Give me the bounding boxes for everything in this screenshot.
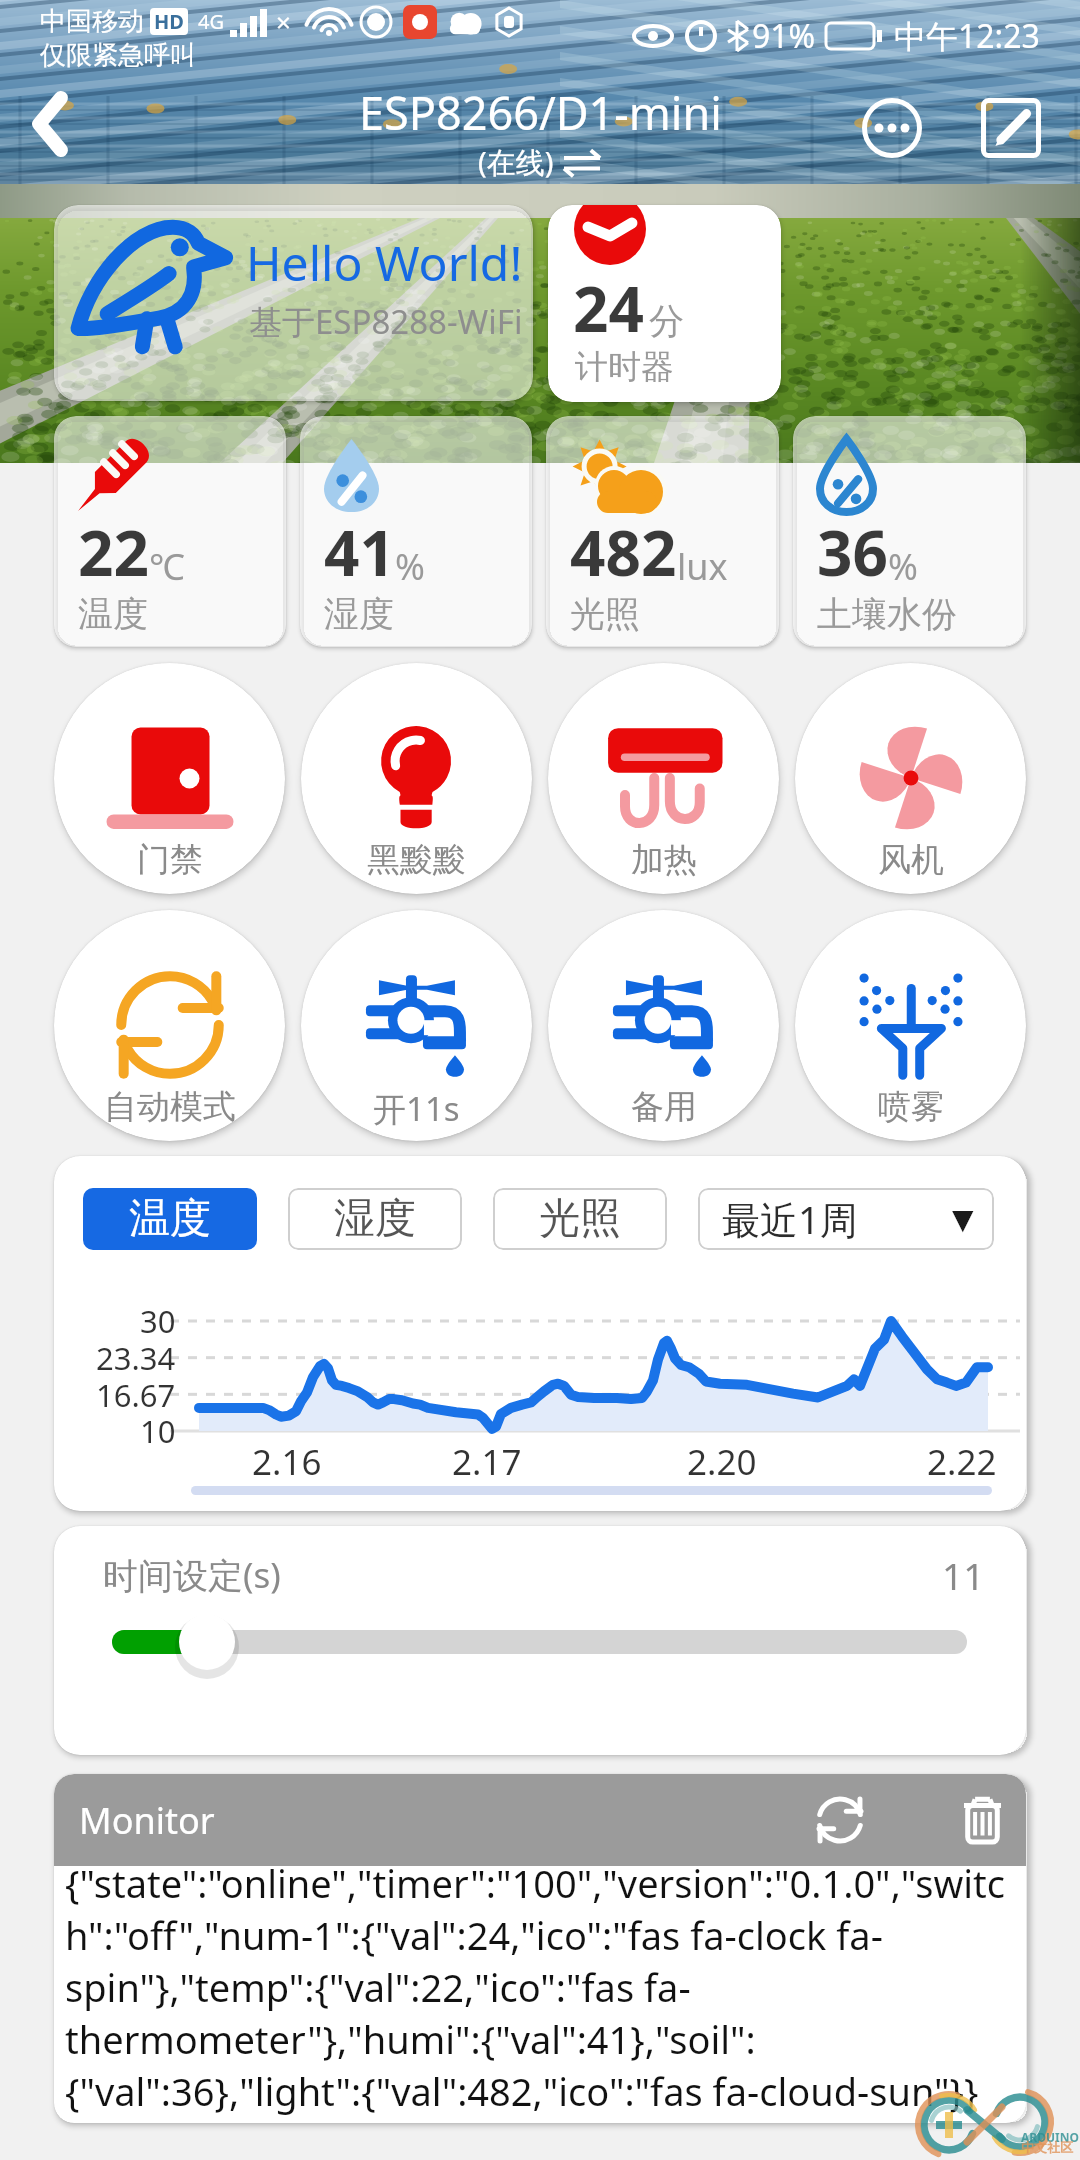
button[interactable]: More options [846,82,938,174]
button[interactable]: Time slider [104,1616,1024,1696]
staticText: 22 [78,510,149,594]
staticText: 中文社区 [1021,2139,1073,2155]
staticText: 光照 [539,1193,621,1245]
staticText: 16.67 [96,1374,176,1416]
staticText: 温度 [129,1193,211,1245]
button[interactable]: Back [3,76,99,172]
button[interactable]: 喷雾 [795,910,1026,1141]
staticText: 备用 [631,1086,697,1128]
button[interactable]: 自动模式 [54,910,285,1141]
button[interactable]: Refresh [804,1784,876,1856]
button[interactable]: 36 [793,416,1026,647]
staticText: 黑黢黢 [367,839,466,881]
staticText: 41 [324,510,395,594]
staticText: 开11s [373,1086,460,1131]
button[interactable]: 黑黢黢 [301,663,532,894]
staticText: 仅限紧急呼叫 [40,39,196,72]
staticText: × [276,4,291,39]
button[interactable]: 温度 [83,1188,257,1250]
staticText: 11 [942,1550,985,1600]
button[interactable]: Edit [965,82,1057,174]
staticText: 中午12:23 [894,14,1040,58]
staticText: Hello World! [246,230,523,295]
staticText: 喷雾 [878,1086,944,1128]
staticText: 10 [140,1410,176,1452]
staticText: 门禁 [137,839,203,881]
button[interactable]: 备用 [548,910,779,1141]
button[interactable]: 湿度 [288,1188,462,1250]
staticText: 湿度 [334,1193,416,1245]
staticText: 计时器 [575,346,674,388]
staticText: 30 [140,1300,176,1342]
button[interactable]: 24 [548,205,781,402]
staticText: 最近1周 [722,1193,858,1245]
staticText: 24 [573,266,644,350]
staticText: ▼ [952,1203,974,1236]
button[interactable]: 加热 [548,663,779,894]
button[interactable]: Clear [946,1784,1018,1856]
staticText: 2.20 [687,1438,757,1486]
button[interactable]: Hello World! [54,205,533,401]
button[interactable]: 风机 [795,663,1026,894]
staticText: 2.22 [927,1438,997,1486]
staticText: 风机 [878,839,944,881]
staticText: 23.34 [96,1337,176,1379]
staticText: (在线) [478,142,554,182]
staticText: ARDUINO [1021,2129,1079,2145]
staticText: ESP8266/D1-mini [359,82,722,143]
staticText: 36 [817,510,888,594]
staticText: 土壤水份 [817,592,957,636]
staticText: % [888,542,918,591]
staticText: 加热 [631,839,697,881]
button[interactable]: 482 [546,416,779,647]
staticText: 自动模式 [104,1086,236,1128]
staticText: 时间设定(s) [103,1551,281,1599]
staticText: 482 [570,510,677,594]
staticText: 2.16 [252,1438,322,1486]
button[interactable]: 41 [300,416,532,647]
staticText: 中国移动 [40,5,144,38]
staticText: % [395,542,425,591]
staticText: ℃ [149,542,185,591]
button[interactable]: 开11s [301,910,532,1141]
staticText: 基于ESP8288-WiFi [249,299,523,344]
staticText: {"state":"online","timer":"100","version… [65,1857,1014,2117]
button[interactable]: 最近1周 [698,1188,994,1250]
staticText: 光照 [570,592,640,636]
staticText: 分 [649,299,684,343]
staticText: HD [154,8,184,35]
button[interactable]: 光照 [493,1188,667,1250]
staticText: 温度 [78,592,148,636]
button[interactable]: 22 [54,416,286,647]
staticText: 湿度 [324,592,394,636]
staticText: lux [677,542,728,591]
staticText: 91% [752,14,816,58]
staticText: 4G [198,8,224,35]
button[interactable]: 门禁 [54,663,285,894]
staticText: Monitor [79,1796,215,1845]
staticText: 2.17 [452,1438,522,1486]
